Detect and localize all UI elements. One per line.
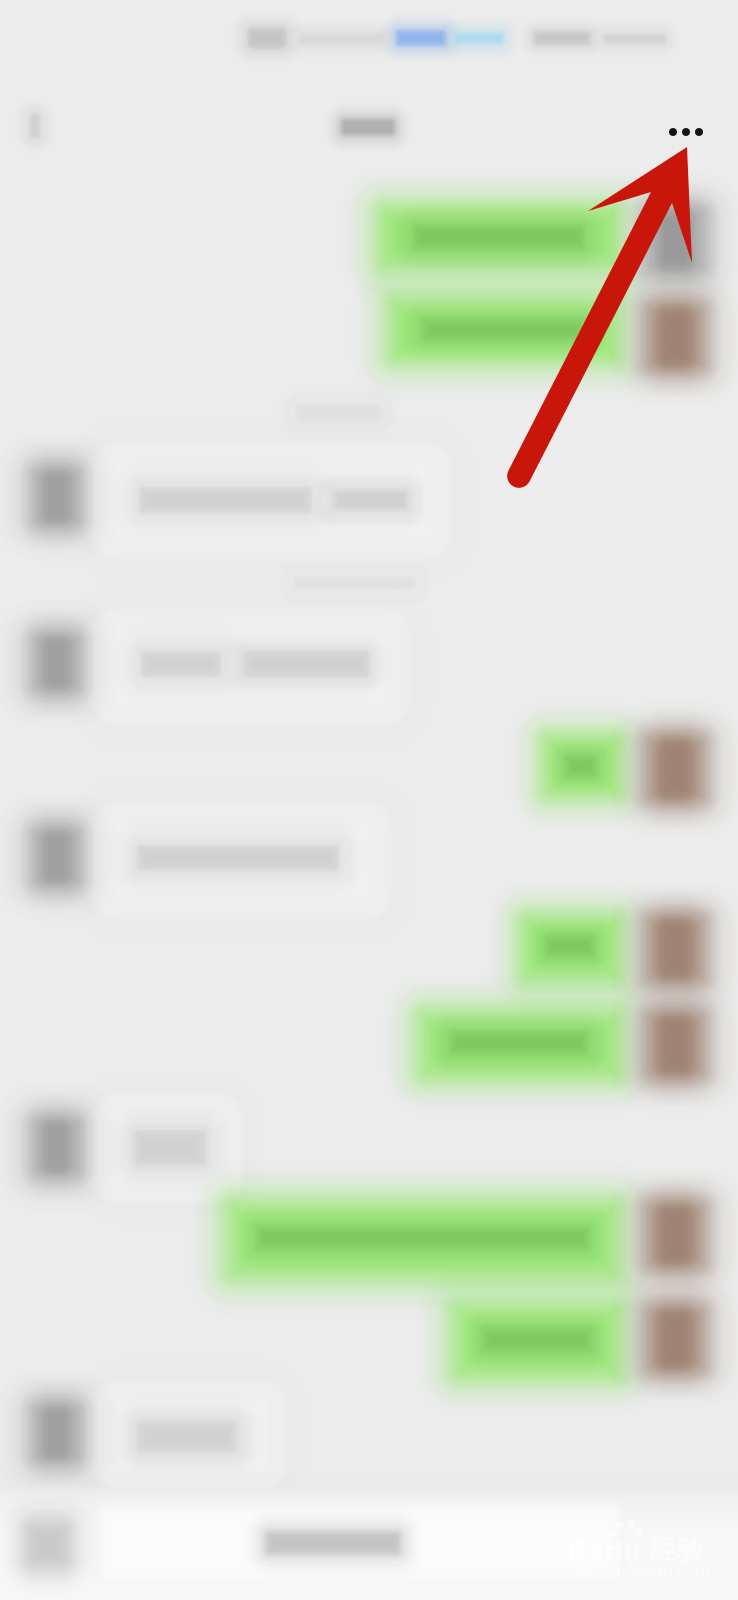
button[interactable]: More	[0, 0, 738, 1600]
button[interactable]: Back	[0, 0, 738, 1600]
